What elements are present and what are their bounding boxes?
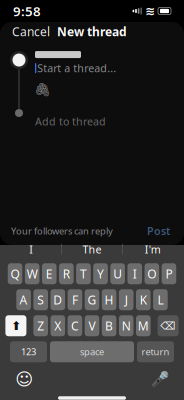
button[interactable]: S — [33, 289, 48, 310]
button[interactable]: Delete — [158, 315, 179, 336]
button[interactable]: Y — [93, 263, 108, 284]
button[interactable]: F — [68, 289, 82, 310]
staticText: D — [53, 292, 62, 308]
button[interactable]: G — [85, 289, 99, 310]
staticText: ⬆ — [11, 319, 21, 332]
button[interactable]: J — [119, 289, 133, 310]
staticText: G — [87, 292, 96, 308]
staticText: return — [141, 346, 169, 358]
button[interactable]: Emoji keyboard — [15, 370, 33, 388]
staticText: V — [88, 318, 95, 334]
button[interactable]: space — [50, 341, 134, 362]
staticText: ⌫ — [161, 320, 176, 332]
button[interactable]: I — [1, 239, 61, 259]
button[interactable]: B — [102, 315, 116, 336]
staticText: S — [37, 292, 44, 308]
staticText: ≋ — [145, 4, 155, 18]
staticText: 9:58 — [13, 2, 41, 20]
staticText: E — [46, 266, 53, 282]
button[interactable]: L — [153, 289, 168, 310]
staticText: Your followers can reply — [11, 225, 113, 237]
button[interactable]: V — [85, 315, 99, 336]
staticText: ☺ — [15, 369, 33, 389]
staticText: O — [147, 266, 156, 282]
staticText: Z — [37, 318, 44, 334]
staticText: 🖇 — [34, 82, 51, 97]
staticText: I — [29, 242, 33, 256]
button[interactable]: Dictation — [151, 370, 169, 388]
staticText: Post — [147, 224, 170, 238]
staticText: W — [27, 266, 38, 282]
staticText: space — [80, 346, 104, 358]
staticText: M — [138, 318, 149, 334]
staticText: 123 — [21, 346, 36, 358]
button[interactable]: M — [136, 315, 151, 336]
button[interactable]: D — [50, 289, 65, 310]
staticText: The — [82, 242, 101, 256]
staticText: C — [71, 318, 79, 334]
button[interactable]: N — [119, 315, 133, 336]
staticText: New thread — [57, 24, 127, 39]
staticText: H — [105, 292, 114, 308]
staticText: I'm — [145, 242, 161, 256]
button[interactable]: X — [50, 315, 65, 336]
staticText: A — [20, 292, 28, 308]
staticText: Y — [97, 266, 104, 282]
staticText: Cancel — [12, 24, 50, 39]
button[interactable]: Shift — [5, 315, 26, 336]
button[interactable]: I'm — [123, 239, 183, 259]
staticText: Start a thread... — [37, 61, 116, 75]
staticText: B — [105, 318, 113, 334]
staticText: Add to thread — [35, 114, 106, 128]
button[interactable]: K — [136, 289, 151, 310]
staticText: F — [72, 292, 78, 308]
button[interactable]: U — [110, 263, 125, 284]
staticText: N — [122, 318, 131, 334]
button[interactable]: Cancel — [9, 18, 53, 45]
staticText: I — [133, 266, 137, 282]
button[interactable]: Z — [33, 315, 48, 336]
staticText: T — [80, 266, 87, 282]
button[interactable]: P — [162, 263, 176, 284]
staticText: L — [157, 292, 163, 308]
button[interactable]: 123 — [10, 341, 47, 362]
button[interactable]: I — [127, 263, 142, 284]
button[interactable]: Attach media — [35, 82, 50, 97]
button[interactable]: W — [25, 263, 39, 284]
button[interactable]: H — [102, 289, 116, 310]
button[interactable]: O — [145, 263, 159, 284]
button[interactable]: return — [137, 341, 174, 362]
button[interactable]: C — [68, 315, 82, 336]
staticText: R — [63, 266, 70, 282]
button[interactable]: T — [76, 263, 91, 284]
button[interactable]: Post — [144, 220, 173, 242]
button[interactable]: The — [62, 239, 122, 259]
button[interactable]: A — [16, 289, 31, 310]
staticText: X — [54, 318, 61, 334]
button[interactable]: R — [59, 263, 74, 284]
button[interactable]: Q — [8, 263, 22, 284]
staticText: U — [113, 266, 122, 282]
button[interactable]: E — [42, 263, 57, 284]
staticText: J — [125, 292, 128, 308]
staticText: P — [165, 266, 172, 282]
staticText: Q — [11, 266, 20, 282]
staticText: 🎤 — [151, 371, 169, 388]
staticText: K — [140, 292, 147, 308]
